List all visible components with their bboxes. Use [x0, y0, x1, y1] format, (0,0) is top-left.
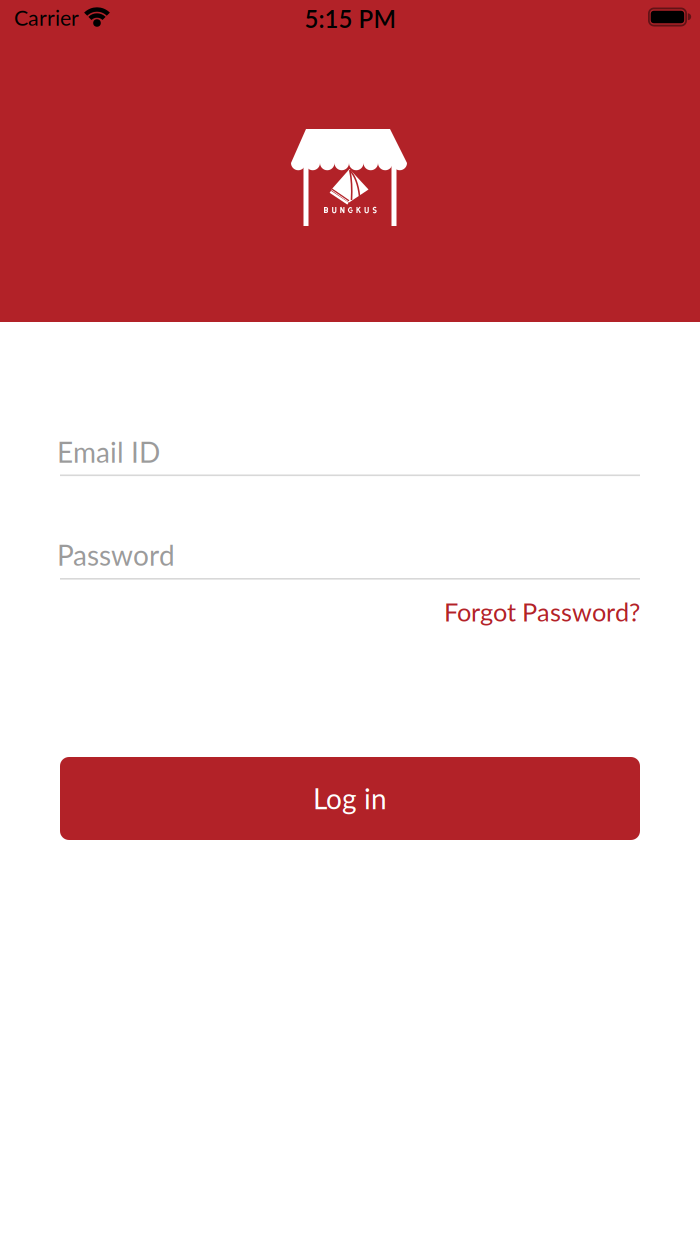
staticText: Email ID — [57, 435, 160, 469]
button[interactable]: Forgot Password? — [444, 596, 640, 627]
staticText: Password — [57, 538, 175, 572]
staticText: Forgot Password? — [444, 596, 640, 627]
button[interactable]: Log in — [60, 757, 640, 840]
button[interactable]: Password — [60, 533, 640, 580]
button[interactable]: Email ID — [60, 430, 640, 476]
staticText: Carrier — [14, 5, 79, 30]
staticText: 5:15 PM — [304, 4, 395, 33]
staticText: Log in — [313, 782, 387, 815]
